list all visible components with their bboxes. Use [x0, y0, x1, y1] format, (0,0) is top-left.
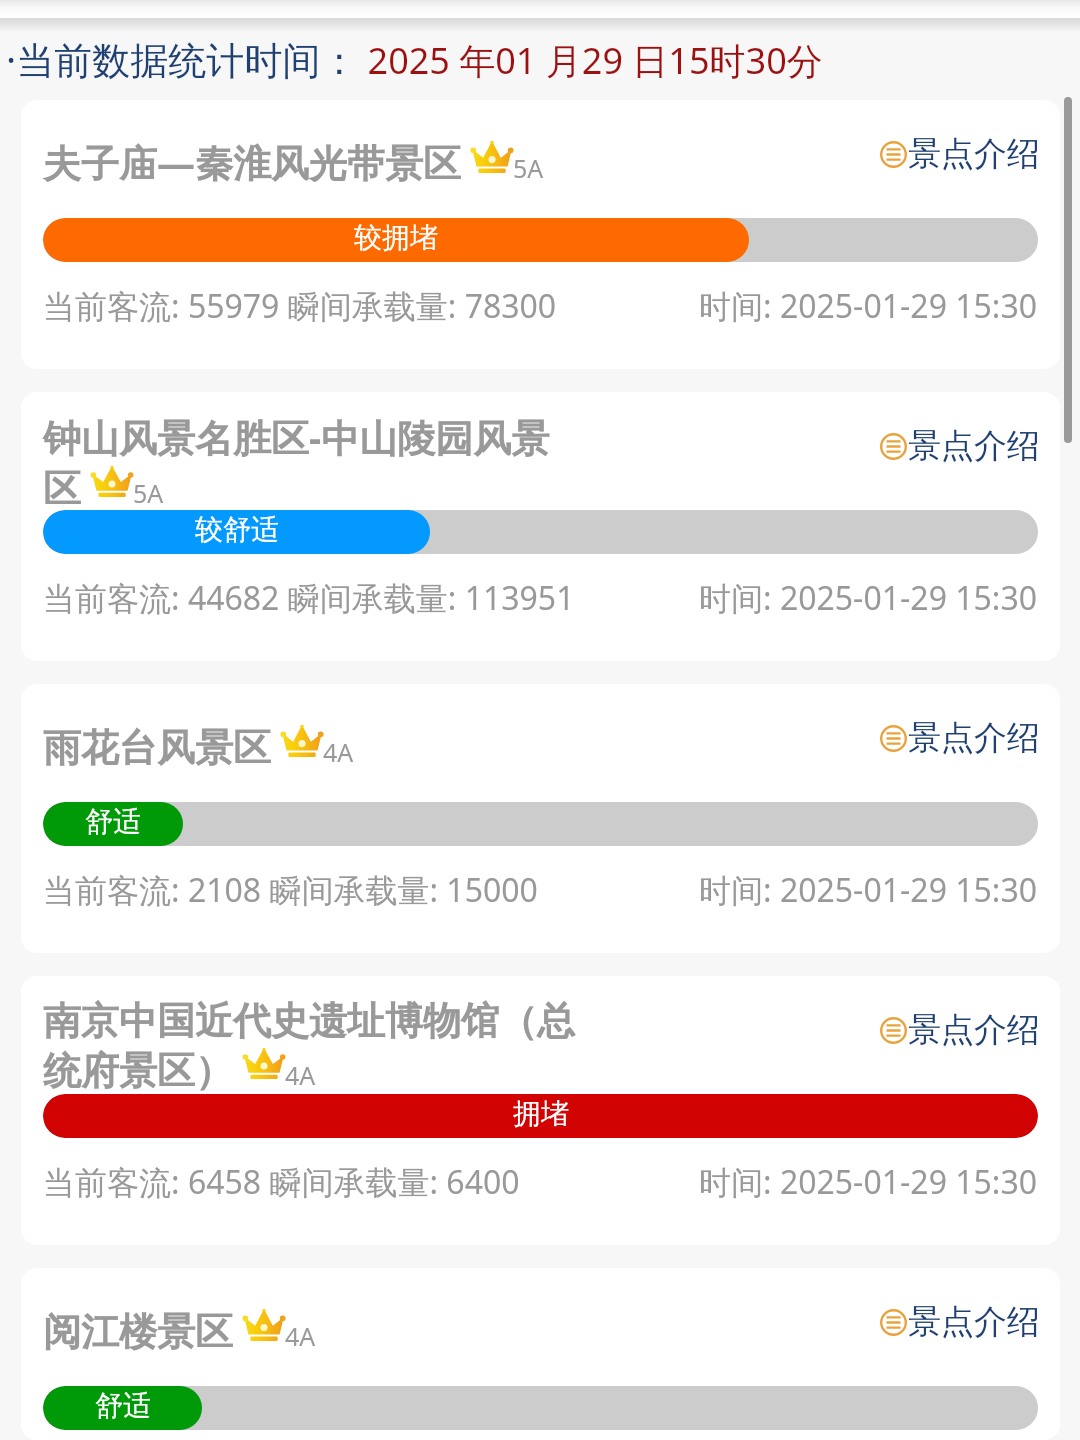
staticText: 当前客流: 6458 瞬间承载量: 6400 [43, 1160, 520, 1204]
staticText: 时间: 2025-01-29 15:30 [699, 1160, 1038, 1204]
button[interactable]: 夫子庙—秦淮风光带景区 ♛5A [21, 100, 1060, 369]
staticText: 阅江楼景区 ♛4A [43, 1304, 316, 1356]
staticText: 较舒适 [195, 512, 279, 547]
other: 景点介绍 [878, 1307, 908, 1337]
staticText: 当前客流: 44682 瞬间承载量: 113951 [43, 576, 575, 620]
staticText: 舒适 [95, 1388, 151, 1423]
staticText: 景点介绍 [908, 1301, 1040, 1343]
staticText: 景点介绍 [908, 717, 1040, 759]
button[interactable]: 景点介绍 [878, 1301, 1040, 1343]
staticText: 舒适 [85, 804, 141, 839]
staticText: 景点介绍 [908, 133, 1040, 175]
staticText: 夫子庙—秦淮风光带景区 ♛5A [43, 136, 544, 188]
staticText: 当前客流: 2108 瞬间承载量: 15000 [43, 868, 538, 912]
button[interactable]: 景点介绍 [878, 1009, 1040, 1051]
button[interactable]: 钟山风景名胜区-中山陵园风景区 ♛5A [21, 392, 1060, 661]
staticText: 较拥堵 [354, 220, 438, 255]
staticText: 雨花台风景区 ♛4A [43, 720, 354, 772]
button[interactable]: 景点介绍 [878, 425, 1040, 467]
other: 景点介绍 [878, 431, 908, 461]
staticText: 景点介绍 [908, 1009, 1040, 1051]
staticText: 钟山风景名胜区-中山陵园风景区 ♛5A [43, 411, 579, 513]
staticText: 南京中国近代史遗址博物馆（总统府景区） ♛4A [43, 997, 579, 1095]
staticText: 当前客流: 55979 瞬间承载量: 78300 [43, 284, 557, 328]
button[interactable]: 南京中国近代史遗址博物馆（总统府景区） ♛4A [21, 976, 1060, 1245]
staticText: 时间: 2025-01-29 15:30 [699, 576, 1038, 620]
other: 景点介绍 [878, 1015, 908, 1045]
button[interactable]: 景点介绍 [878, 133, 1040, 175]
staticText: 景点介绍 [908, 425, 1040, 467]
staticText: 时间: 2025-01-29 15:30 [699, 284, 1038, 328]
staticText: ·当前数据统计时间： 2025 年01 月29 日15时30分 [6, 33, 823, 85]
staticText: 拥堵 [513, 1096, 569, 1131]
other: 景点介绍 [878, 723, 908, 753]
other: 景点介绍 [878, 139, 908, 169]
button[interactable]: 景点介绍 [878, 717, 1040, 759]
staticText: 时间: 2025-01-29 15:30 [699, 868, 1038, 912]
button[interactable]: 雨花台风景区 ♛4A [21, 684, 1060, 953]
button[interactable]: 阅江楼景区 ♛4A [21, 1268, 1060, 1440]
